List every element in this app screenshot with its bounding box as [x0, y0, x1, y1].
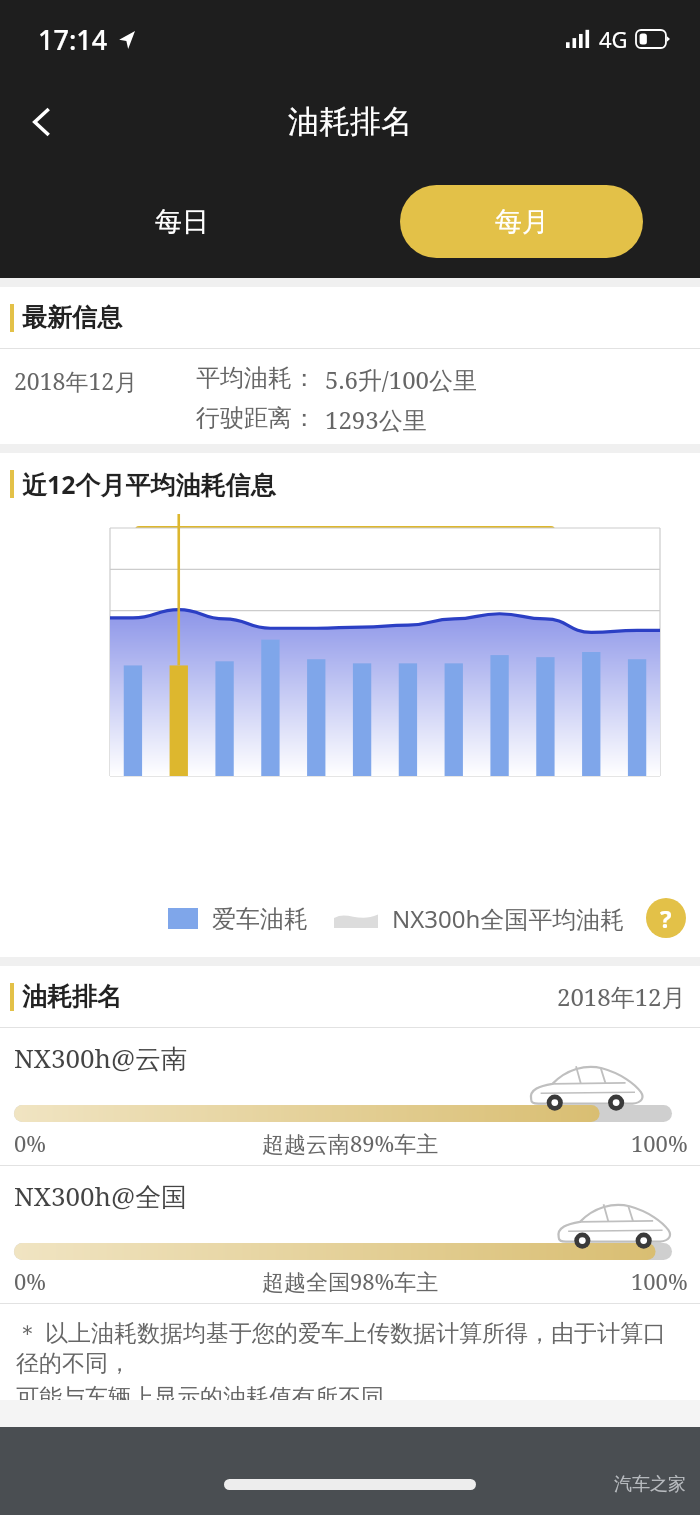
- staticText: 行驶距离：: [196, 403, 316, 433]
- staticText: 每月: [495, 205, 549, 239]
- button[interactable]: Back: [14, 93, 72, 151]
- staticText: 月平均油耗：: [248, 567, 380, 595]
- button[interactable]: 每月: [400, 185, 643, 258]
- staticText: 0%: [14, 1266, 47, 1296]
- staticText: 最新信息: [22, 302, 122, 333]
- staticText: 平均油耗：: [196, 363, 316, 393]
- staticText: 超越全国98%车主: [262, 1266, 439, 1296]
- staticText: 油耗排名: [288, 102, 412, 141]
- staticText: ＊ 以上油耗数据均基于您的爱车上传数据计算所得，由于计算口径的不同，: [16, 1316, 688, 1378]
- staticText: 汽车之家: [614, 1473, 686, 1496]
- staticText: 油耗排名: [22, 981, 122, 1012]
- staticText: 5.6升/100公里: [325, 363, 477, 396]
- staticText: 4G: [599, 24, 628, 54]
- staticText: 100%: [631, 1266, 688, 1296]
- staticText: 爱车油耗: [212, 904, 308, 934]
- button[interactable]: Help: [646, 898, 686, 938]
- button[interactable]: NX300h@云南: [0, 1028, 700, 1165]
- staticText: 2018年12月: [14, 365, 138, 396]
- staticText: 1293公里: [325, 403, 427, 436]
- staticText: 2018年12月: [557, 980, 686, 1013]
- staticText: 可能与车辆上显示的油耗值有所不同。: [16, 1383, 407, 1400]
- staticText: NX300h@全国: [14, 1178, 188, 1214]
- staticText: ?: [660, 902, 672, 935]
- button[interactable]: NX300h@全国: [0, 1166, 700, 1303]
- staticText: 0%: [14, 1128, 47, 1158]
- button[interactable]: 每日: [112, 189, 252, 255]
- staticText: NX300h@云南: [14, 1040, 188, 1076]
- staticText: 1833公里: [386, 599, 480, 628]
- staticText: 17:14: [38, 21, 108, 58]
- staticText: 月行驶距离：: [248, 599, 380, 627]
- staticText: NX300h全国平均油耗: [392, 902, 625, 935]
- staticText: 5.3升/100公里: [386, 567, 526, 597]
- staticText: 每日: [155, 205, 209, 239]
- staticText: 18年1月: [149, 536, 230, 566]
- staticText: 100%: [631, 1128, 688, 1158]
- staticText: 超越云南89%车主: [262, 1128, 439, 1158]
- staticText: 近12个月平均油耗信息: [22, 467, 276, 501]
